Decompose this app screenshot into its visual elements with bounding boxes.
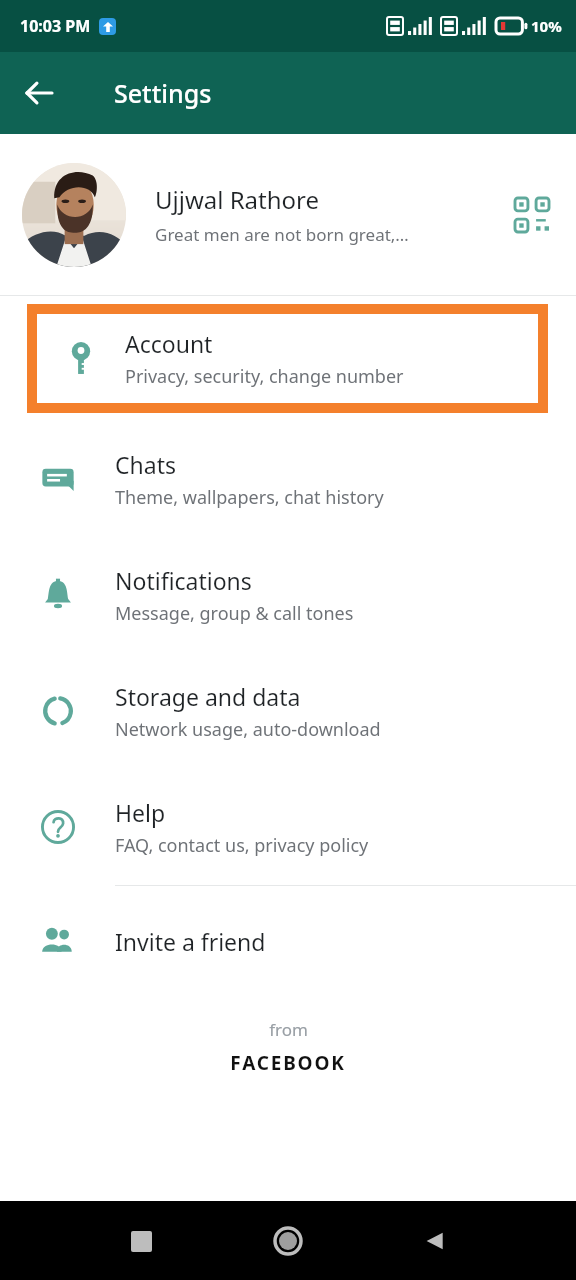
staticText: Help [115, 797, 166, 828]
button[interactable]: Account [37, 314, 538, 403]
staticText: from [269, 1018, 308, 1041]
staticText: FAQ, contact us, privacy policy [115, 833, 369, 858]
staticText: Privacy, security, change number [125, 364, 404, 389]
button[interactable]: Ujjwal Rathore [0, 134, 576, 295]
staticText: Invite a friend [115, 926, 266, 957]
button[interactable]: Help [0, 769, 576, 885]
button[interactable]: Back [407, 1213, 463, 1269]
button[interactable]: Back [12, 66, 66, 120]
button[interactable]: Home [260, 1213, 316, 1269]
staticText: Ujjwal Rathore [155, 183, 320, 216]
button[interactable]: Notifications [0, 537, 576, 653]
staticText: Great men are not born great,… [155, 223, 409, 246]
staticText: Theme, wallpapers, chat history [115, 485, 384, 510]
staticText: 10% [531, 16, 562, 36]
staticText: Settings [114, 76, 212, 110]
button[interactable]: Invite a friend [0, 886, 576, 996]
button[interactable]: Chats [0, 421, 576, 537]
button[interactable]: Storage and data [0, 653, 576, 769]
staticText: Storage and data [115, 681, 301, 712]
button[interactable]: QR code [506, 189, 558, 241]
staticText: Notifications [115, 565, 252, 596]
staticText: Chats [115, 449, 176, 480]
staticText: 10:03 PM [20, 15, 91, 37]
button[interactable]: Recent apps [113, 1213, 169, 1269]
staticText: Network usage, auto-download [115, 717, 381, 742]
staticText: Account [125, 328, 213, 359]
staticText: Message, group & call tones [115, 601, 354, 626]
staticText: FACEBOOK [230, 1050, 346, 1076]
